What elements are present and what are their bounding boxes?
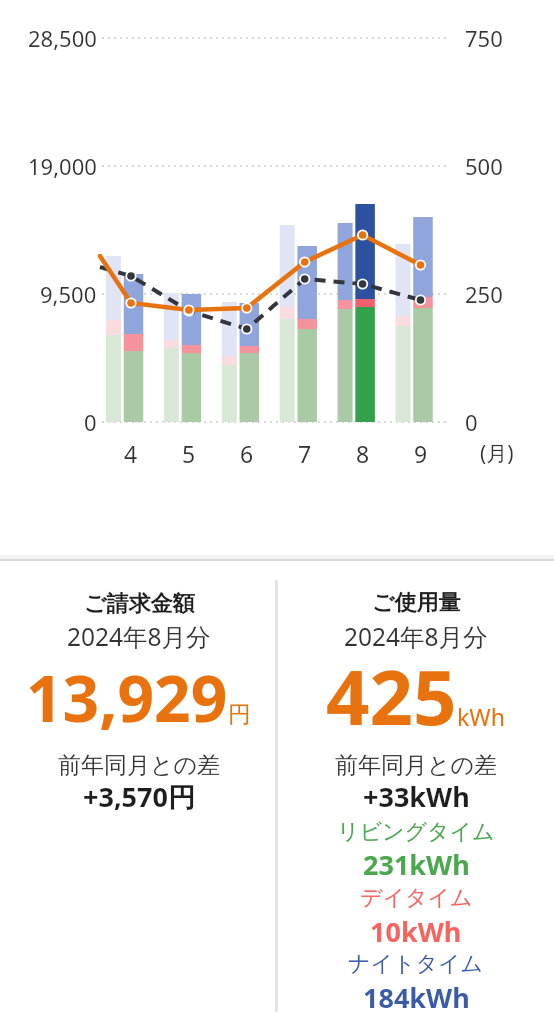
staticText: 6 <box>240 438 254 469</box>
staticText: 0 <box>465 407 478 437</box>
staticText: 0 <box>84 407 97 437</box>
staticText: 184kWh <box>363 979 470 1016</box>
staticText: (月) <box>480 439 514 468</box>
staticText: 円 <box>228 700 251 729</box>
staticText: 28,500 <box>28 23 97 53</box>
staticText: 4 <box>124 438 138 469</box>
staticText: 9 <box>414 438 428 469</box>
staticText: +3,570円 <box>83 778 195 815</box>
staticText: 8 <box>356 438 370 469</box>
staticText: +33kWh <box>363 778 470 815</box>
staticText: 19,000 <box>28 151 97 181</box>
staticText: kWh <box>457 701 505 732</box>
staticText: 500 <box>465 151 503 181</box>
staticText: 425 <box>326 644 457 748</box>
staticText: 7 <box>298 438 312 469</box>
staticText: ご請求金額 <box>84 590 195 618</box>
staticText: 10kWh <box>370 913 462 950</box>
staticText: デイタイム <box>360 884 473 912</box>
staticText: 9,500 <box>40 279 97 309</box>
button[interactable] <box>0 560 276 1020</box>
staticText: ご使用量 <box>372 589 461 617</box>
staticText: 5 <box>182 438 196 469</box>
staticText: 前年同月との差 <box>58 751 221 780</box>
staticText: 750 <box>465 23 503 53</box>
staticText: 231kWh <box>363 846 470 883</box>
staticText: ナイトタイム <box>348 950 484 978</box>
staticText: 250 <box>465 279 503 309</box>
staticText: 2024年8月分 <box>344 620 488 653</box>
staticText: 2024年8月分 <box>67 620 211 653</box>
staticText: 前年同月との差 <box>335 751 498 780</box>
button[interactable] <box>278 560 554 1020</box>
staticText: リビングタイム <box>337 818 495 846</box>
staticText: 13,929 <box>26 654 228 741</box>
